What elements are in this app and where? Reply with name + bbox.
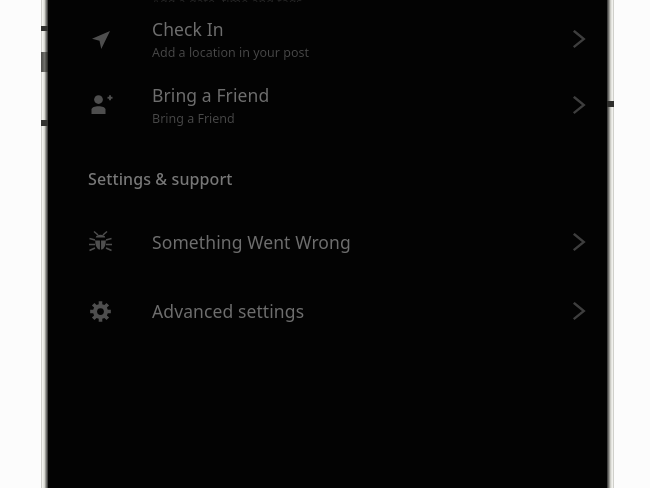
staticText: Settings & support (88, 168, 233, 190)
staticText: Add a location in your post (152, 44, 309, 61)
other: Bring a Friend (551, 70, 607, 139)
staticText: Check In (152, 17, 224, 41)
staticText: Bring a Friend (152, 83, 270, 107)
staticText: Advanced settings (152, 299, 305, 323)
button[interactable]: Bring a Friend (48, 70, 607, 139)
staticText: Bring a Friend (152, 110, 235, 127)
button[interactable]: Advanced settings (48, 292, 607, 330)
other: Something Went Wrong (551, 223, 607, 261)
other: Check In (551, 8, 607, 70)
staticText: Something Went Wrong (152, 230, 351, 254)
button[interactable]: Something Went Wrong (48, 223, 607, 261)
other: Advanced settings (551, 292, 607, 330)
staticText: Add a date, time and tags (152, 0, 303, 2)
button[interactable]: Check In (48, 8, 607, 70)
